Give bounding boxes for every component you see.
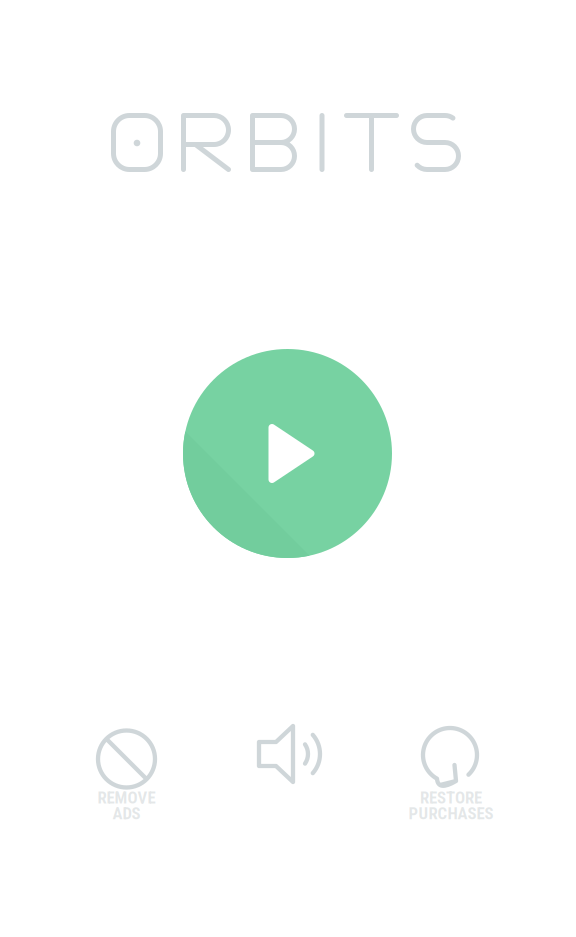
staticText: REMOVE [97, 788, 155, 808]
button[interactable]: REMOVE ADS [52, 721, 200, 823]
button[interactable]: Sound [214, 721, 362, 797]
staticText: PURCHASES [408, 804, 493, 823]
button[interactable]: Play [183, 349, 392, 558]
staticText: ADS [112, 804, 140, 823]
button[interactable]: RESTORE PURCHASES [377, 721, 525, 823]
staticText: RESTORE [420, 788, 482, 808]
